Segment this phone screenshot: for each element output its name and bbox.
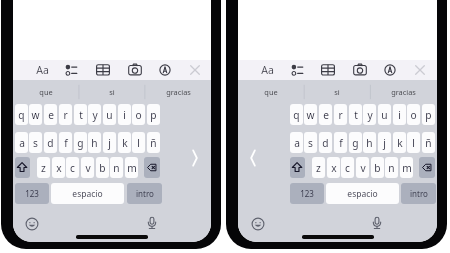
button[interactable]: w [29, 104, 42, 125]
staticText: c [345, 161, 350, 175]
button[interactable]: a [15, 132, 28, 153]
button[interactable]: b [96, 157, 109, 178]
button[interactable]: l [407, 132, 420, 153]
button[interactable]: gracias [370, 80, 436, 104]
button[interactable]: Table [93, 60, 113, 80]
button[interactable]: Bullet list [288, 60, 308, 80]
button[interactable]: e [319, 104, 332, 125]
button[interactable]: s [304, 132, 317, 153]
button[interactable]: Markup [380, 60, 400, 80]
button[interactable]: q [15, 104, 28, 125]
button[interactable]: v [356, 157, 369, 178]
button[interactable]: Dictation [367, 213, 387, 233]
button[interactable]: f [334, 132, 347, 153]
button[interactable]: Text format [30, 61, 54, 79]
staticText: u [381, 108, 388, 122]
button[interactable]: d [319, 132, 332, 153]
button[interactable]: Backspace [419, 157, 435, 178]
button[interactable]: ñ [422, 132, 435, 153]
button[interactable]: j [103, 132, 116, 153]
button[interactable]: k [118, 132, 131, 153]
staticText: gracias [166, 87, 191, 97]
button[interactable]: p [147, 104, 160, 125]
button[interactable]: Expand keyboard [187, 148, 203, 168]
button[interactable]: Emoji [248, 214, 268, 234]
button[interactable]: x [52, 157, 65, 178]
button[interactable]: y [363, 104, 376, 125]
button[interactable]: ñ [147, 132, 160, 153]
button[interactable]: u [103, 104, 116, 125]
button[interactable]: Close [185, 60, 205, 80]
button[interactable]: que [238, 80, 304, 104]
button[interactable]: u [378, 104, 391, 125]
button[interactable]: k [393, 132, 406, 153]
button[interactable]: r [59, 104, 72, 125]
button[interactable]: Bullet list [62, 60, 82, 80]
button[interactable]: q [290, 104, 303, 125]
staticText: d [322, 136, 329, 150]
button[interactable]: gracias [145, 80, 211, 104]
button[interactable]: intro [401, 183, 436, 204]
button[interactable]: h [363, 132, 376, 153]
button[interactable]: m [400, 157, 413, 178]
button[interactable]: v [81, 157, 94, 178]
button[interactable]: e [44, 104, 57, 125]
button[interactable]: n [110, 157, 123, 178]
button[interactable]: Camera [125, 60, 145, 80]
staticText: intro [136, 188, 154, 199]
button[interactable]: Camera [350, 60, 370, 80]
button[interactable]: espacio [51, 183, 124, 204]
button[interactable]: i [393, 104, 406, 125]
button[interactable]: p [422, 104, 435, 125]
button[interactable]: t [349, 104, 362, 125]
button[interactable]: d [44, 132, 57, 153]
staticText: b [99, 161, 106, 175]
button[interactable]: 123 [15, 183, 49, 204]
button[interactable]: Shift [15, 157, 30, 178]
button[interactable]: j [378, 132, 391, 153]
button[interactable]: c [66, 157, 79, 178]
button[interactable]: espacio [326, 183, 399, 204]
button[interactable]: m [125, 157, 138, 178]
button[interactable]: f [59, 132, 72, 153]
button[interactable]: b [371, 157, 384, 178]
button[interactable]: Markup [155, 60, 175, 80]
button[interactable]: r [334, 104, 347, 125]
button[interactable]: y [88, 104, 101, 125]
button[interactable]: z [312, 157, 325, 178]
staticText: j [108, 136, 111, 150]
button[interactable]: t [74, 104, 87, 125]
button[interactable]: Expand keyboard [245, 148, 261, 168]
button[interactable]: que [13, 80, 79, 104]
button[interactable]: Shift [290, 157, 305, 178]
button[interactable]: si [79, 80, 145, 104]
button[interactable]: Close [410, 60, 430, 80]
button[interactable]: si [304, 80, 370, 104]
button[interactable]: intro [127, 183, 162, 204]
button[interactable]: x [327, 157, 340, 178]
button[interactable]: 123 [290, 183, 324, 204]
button[interactable]: i [118, 104, 131, 125]
staticText: Aa [36, 63, 49, 77]
button[interactable]: c [341, 157, 354, 178]
staticText: j [383, 136, 386, 150]
button[interactable]: g [74, 132, 87, 153]
button[interactable]: Backspace [144, 157, 160, 178]
staticText: 123 [300, 188, 314, 199]
button[interactable]: o [407, 104, 420, 125]
button[interactable]: Dictation [142, 213, 162, 233]
button[interactable]: z [37, 157, 50, 178]
button[interactable]: n [385, 157, 398, 178]
button[interactable]: w [304, 104, 317, 125]
button[interactable]: l [132, 132, 145, 153]
button[interactable]: Table [318, 60, 338, 80]
button[interactable]: Text format [255, 61, 279, 79]
button[interactable]: o [132, 104, 145, 125]
button[interactable]: g [349, 132, 362, 153]
button[interactable]: h [88, 132, 101, 153]
button[interactable]: a [290, 132, 303, 153]
button[interactable]: Emoji [22, 214, 42, 234]
staticText: p [425, 108, 432, 122]
button[interactable]: s [29, 132, 42, 153]
staticText: que [39, 87, 53, 97]
